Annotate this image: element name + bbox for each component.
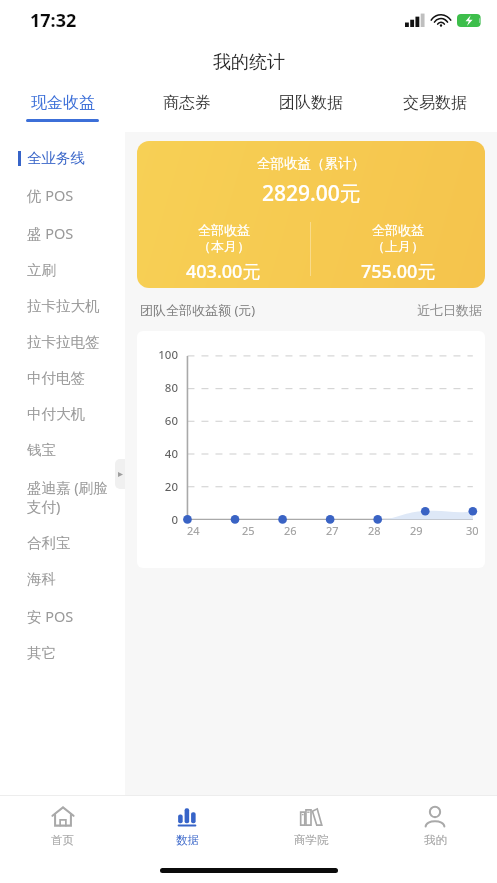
staticText: 首页 [51, 833, 74, 847]
button[interactable]: 交易数据 [373, 85, 497, 132]
staticText: 27 [326, 523, 339, 538]
staticText: 30 [466, 523, 479, 538]
staticText: 25 [242, 523, 255, 538]
staticText: 我的统计 [213, 51, 285, 74]
staticText: 80 [164, 380, 178, 396]
staticText: 安 POS [27, 606, 74, 626]
button[interactable]: 盛 POS [0, 214, 125, 252]
staticText: 0 [171, 512, 178, 528]
staticText: 29 [410, 523, 423, 538]
staticText: 全部收益 [198, 222, 250, 238]
button[interactable]: 团队数据 [249, 85, 373, 132]
button[interactable]: 商态券 [125, 85, 249, 132]
button[interactable]: 立刷 [0, 252, 125, 288]
staticText: 2829.00元 [262, 179, 361, 208]
staticText: 中付电签 [27, 369, 85, 387]
button[interactable]: 拉卡拉电签 [0, 324, 125, 360]
staticText: 立刷 [27, 261, 56, 279]
staticText: 26 [284, 523, 297, 538]
staticText: 现金收益 [31, 93, 95, 113]
staticText: 海科 [27, 570, 56, 588]
staticText: 优 POS [27, 185, 74, 205]
button[interactable]: 商学院 [249, 795, 373, 857]
staticText: 中付大机 [27, 405, 85, 423]
staticText: 40 [164, 446, 178, 462]
button[interactable]: 全部收益（累计） [137, 141, 485, 288]
staticText: 交易数据 [403, 93, 467, 113]
button[interactable]: 海科 [0, 561, 125, 597]
staticText: 团队数据 [279, 93, 343, 113]
button[interactable]: 钱宝 [0, 432, 125, 468]
staticText: 团队全部收益额 (元) [140, 301, 256, 319]
staticText: 商学院 [294, 833, 329, 847]
staticText: 其它 [27, 644, 56, 662]
staticText: 拉卡拉电签 [27, 333, 100, 351]
staticText: 合利宝 [27, 534, 71, 552]
button[interactable]: 优 POS [0, 176, 125, 214]
staticText: 拉卡拉大机 [27, 297, 100, 315]
staticText: （上月） [372, 238, 424, 254]
button[interactable]: 合利宝 [0, 525, 125, 561]
button[interactable]: 现金收益 [0, 85, 125, 132]
staticText: 60 [164, 413, 178, 429]
staticText: 28 [368, 523, 381, 538]
staticText: 全业务线 [27, 149, 85, 167]
staticText: 全部收益（累计） [257, 155, 365, 172]
staticText: 商态券 [163, 93, 211, 113]
button[interactable]: 中付大机 [0, 396, 125, 432]
staticText: 20 [164, 479, 178, 495]
button[interactable]: 全业务线 [0, 140, 125, 176]
button[interactable]: 数据 [125, 795, 249, 857]
button[interactable]: 近七日数据 [417, 302, 482, 318]
staticText: 数据 [176, 833, 199, 847]
staticText: 盛 POS [27, 223, 74, 243]
staticText: 24 [187, 523, 200, 538]
button[interactable]: 盛迪嘉 (刷脸支付) [0, 468, 125, 525]
staticText: 755.00元 [361, 259, 436, 284]
button[interactable]: 我的 [373, 795, 497, 857]
button[interactable]: 安 POS [0, 597, 125, 635]
staticText: 403.00元 [186, 259, 261, 284]
button[interactable]: 首页 [0, 795, 125, 857]
button[interactable]: 其它 [0, 635, 125, 671]
button[interactable]: 拉卡拉大机 [0, 288, 125, 324]
staticText: 钱宝 [27, 441, 56, 459]
staticText: 全部收益 [372, 222, 424, 238]
staticText: 100 [158, 347, 178, 363]
button[interactable]: 中付电签 [0, 360, 125, 396]
staticText: 我的 [424, 833, 447, 847]
staticText: 17:32 [30, 8, 77, 33]
staticText: 盛迪嘉 (刷脸支付) [27, 477, 115, 516]
staticText: （本月） [198, 238, 250, 254]
button[interactable]: 展开 [115, 459, 125, 489]
